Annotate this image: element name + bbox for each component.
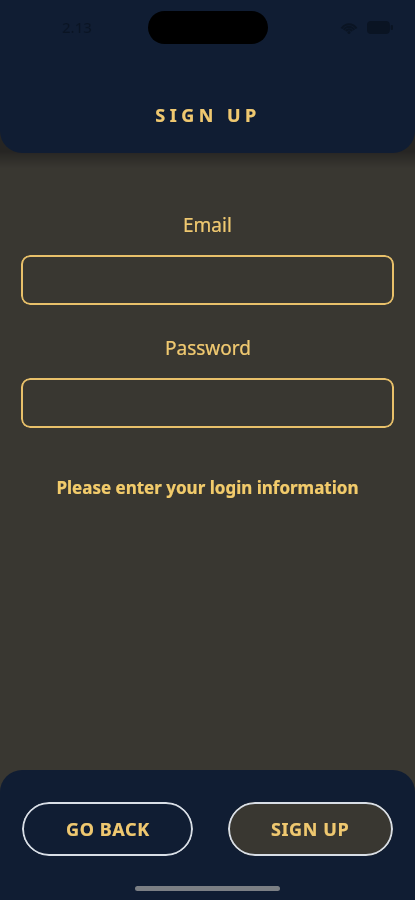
button[interactable] bbox=[21, 255, 394, 305]
staticText: SIGN UP bbox=[271, 817, 350, 842]
staticText: Please enter your login information bbox=[56, 476, 359, 499]
staticText: Password bbox=[165, 335, 251, 361]
staticText: 2.13 bbox=[62, 17, 92, 37]
other: Wi-Fi bbox=[340, 20, 358, 34]
staticText: SIGN UP bbox=[155, 103, 261, 128]
staticText: Email bbox=[183, 212, 232, 238]
staticText: GO BACK bbox=[66, 817, 150, 842]
other: Battery bbox=[367, 21, 393, 34]
button[interactable] bbox=[21, 378, 394, 428]
button[interactable]: SIGN UP bbox=[228, 802, 393, 856]
button[interactable]: GO BACK bbox=[22, 802, 193, 856]
